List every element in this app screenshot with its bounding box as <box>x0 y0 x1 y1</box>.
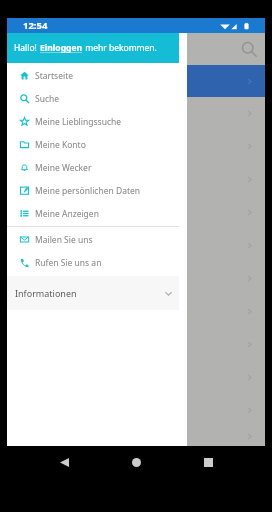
staticText: Mailen Sie uns <box>35 234 93 246</box>
button[interactable]: Search <box>238 38 260 60</box>
button[interactable]: Hallo! <box>7 33 179 63</box>
button[interactable]: Home <box>127 453 145 471</box>
button[interactable]: Informationen <box>7 276 179 310</box>
button[interactable] <box>7 97 265 130</box>
staticText: Einloggen <box>40 42 83 54</box>
staticText: 12:54 <box>23 19 48 32</box>
button[interactable]: Meine Konto <box>7 133 179 156</box>
staticText: Meine Konto <box>35 139 86 151</box>
button[interactable] <box>7 427 265 446</box>
button[interactable] <box>7 262 265 295</box>
button[interactable] <box>7 196 265 229</box>
staticText: Meine Wecker <box>35 162 92 174</box>
button[interactable]: Suche <box>7 87 179 110</box>
staticText: Hallo! <box>14 42 40 54</box>
button[interactable]: Meine Anzeigen <box>7 202 179 225</box>
button[interactable] <box>7 65 265 97</box>
staticText: Suche <box>35 93 60 105</box>
staticText: Rufen Sie uns an <box>35 257 102 269</box>
button[interactable] <box>7 328 265 361</box>
button[interactable]: Meine persönlichen Daten <box>7 179 179 202</box>
button[interactable]: Back <box>55 453 73 471</box>
button[interactable]: Startseite <box>7 64 179 87</box>
button[interactable] <box>7 295 265 328</box>
staticText: Meine Anzeigen <box>35 208 99 220</box>
button[interactable] <box>7 163 265 196</box>
staticText: Meine persönlichen Daten <box>35 185 141 197</box>
staticText: mehr bekommen. <box>83 42 157 54</box>
button[interactable] <box>7 394 265 427</box>
button[interactable] <box>7 361 265 394</box>
staticText: Informationen <box>15 287 77 299</box>
staticText: Meine Lieblingssuche <box>35 116 122 128</box>
staticText: Startseite <box>35 70 74 82</box>
button[interactable] <box>7 130 265 163</box>
button[interactable]: Recents <box>199 453 217 471</box>
button[interactable]: Meine Lieblingssuche <box>7 110 179 133</box>
button[interactable]: Mailen Sie uns <box>7 228 179 251</box>
button[interactable]: Rufen Sie uns an <box>7 251 179 274</box>
button[interactable]: Meine Wecker <box>7 156 179 179</box>
button[interactable] <box>7 229 265 262</box>
